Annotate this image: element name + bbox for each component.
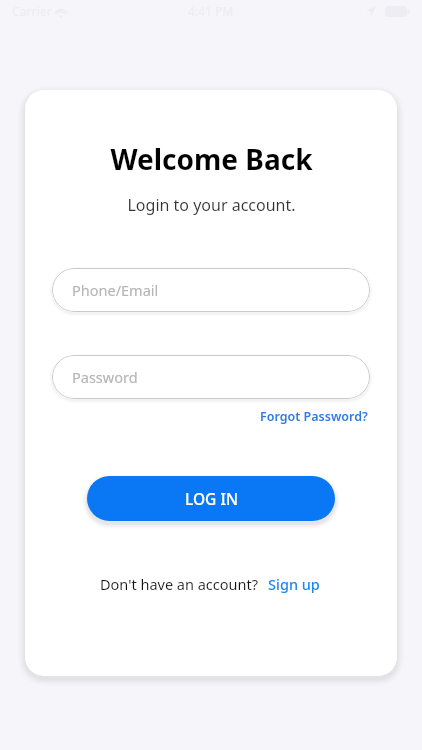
staticText: LOG IN [185,488,238,509]
button[interactable]: Phone/Email [52,268,370,312]
button[interactable]: LOG IN [87,476,335,521]
staticText: Carrier [12,3,52,19]
button[interactable]: Forgot Password? [258,405,370,428]
staticText: Phone/Email [72,280,159,300]
button[interactable]: Sign up [266,571,322,597]
staticText: Login to your account. [127,194,296,216]
staticText: Don't have an account? [100,574,258,594]
staticText: 4:41 PM [188,3,234,19]
button[interactable]: Password [52,355,370,399]
staticText: Forgot Password? [260,408,368,425]
staticText: Sign up [268,574,320,594]
staticText: Password [72,367,138,387]
staticText: Welcome Back [110,140,313,178]
